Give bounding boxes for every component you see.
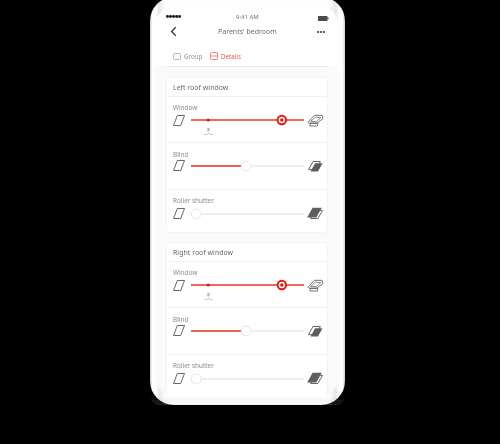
staticText: Details (221, 52, 241, 60)
staticText: Blind (173, 150, 189, 159)
button[interactable] (184, 157, 311, 175)
staticText: Parents' bedroom (218, 27, 277, 37)
staticText: Roller shutter (173, 361, 214, 370)
staticText: Window (173, 268, 198, 277)
staticText: Blind (173, 315, 189, 324)
staticText: Left roof window (173, 83, 229, 93)
button[interactable] (184, 111, 311, 129)
staticText: Group (184, 52, 203, 60)
button[interactable]: More options (311, 22, 331, 42)
button[interactable]: Details (208, 48, 243, 64)
staticText: Roller shutter (173, 196, 214, 205)
button[interactable] (184, 322, 311, 340)
staticText: Window (173, 103, 198, 112)
button[interactable]: Left roof window (166, 77, 328, 233)
button[interactable]: Right roof window (166, 242, 328, 397)
button[interactable]: Group (171, 48, 205, 64)
button[interactable] (184, 370, 311, 388)
staticText: 9:41 AM (236, 13, 259, 21)
button[interactable] (184, 205, 311, 223)
button[interactable] (184, 276, 311, 294)
button[interactable]: Back (163, 21, 183, 41)
staticText: Right roof window (173, 248, 234, 258)
